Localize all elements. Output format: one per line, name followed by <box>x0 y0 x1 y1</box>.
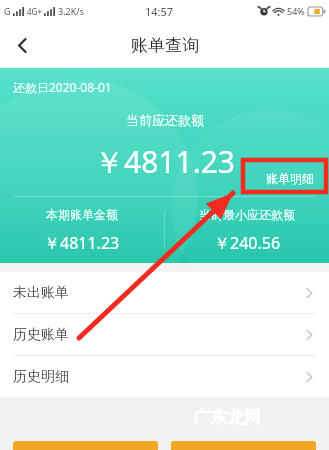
staticText: 历史账单 <box>13 326 302 344</box>
staticText: ￥4811.23 <box>94 141 235 182</box>
staticText: 14:57 <box>145 4 174 19</box>
button[interactable]: 未出账单 <box>0 272 329 313</box>
button[interactable]: 历史账单 <box>0 314 329 355</box>
staticText: 历史明细 <box>13 368 302 386</box>
staticText: 账单明细 <box>266 171 314 186</box>
staticText: 3.2K/s <box>58 5 84 17</box>
staticText: 当前最小应还款额 <box>199 207 295 222</box>
staticText: 当前应还款额 <box>126 112 204 128</box>
staticText: 还款日2020-08-01 <box>13 79 112 95</box>
staticText: 未出账单 <box>13 284 302 302</box>
staticText: 54% <box>287 5 305 17</box>
staticText: G <box>4 5 11 17</box>
staticText: ￥4811.23 <box>44 232 120 254</box>
staticText: 广东龙网 <box>193 407 261 428</box>
staticText: 本期账单金额 <box>46 207 118 222</box>
staticText: ￥240.56 <box>214 232 281 254</box>
staticText: 4G+ <box>27 6 42 17</box>
button[interactable]: 立即还款 <box>13 441 158 450</box>
button[interactable]: 历史明细 <box>0 356 329 397</box>
button[interactable]: 账单明细 <box>257 169 323 194</box>
button[interactable]: Back <box>0 23 44 67</box>
button[interactable]: 账单分期 <box>171 441 316 450</box>
staticText: 账单查询 <box>131 35 199 56</box>
